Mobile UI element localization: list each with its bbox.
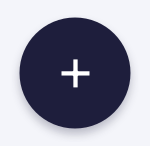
button[interactable]: Add <box>19 17 130 128</box>
